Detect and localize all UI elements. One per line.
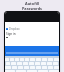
button[interactable] — [5, 46, 59, 56]
staticText: Autofill — [25, 1, 39, 6]
button[interactable]: Dropbox — [6, 27, 20, 31]
staticText: Passwords — [22, 6, 42, 11]
staticText: Sign in — [6, 32, 16, 36]
staticText: Dropbox — [9, 27, 20, 31]
